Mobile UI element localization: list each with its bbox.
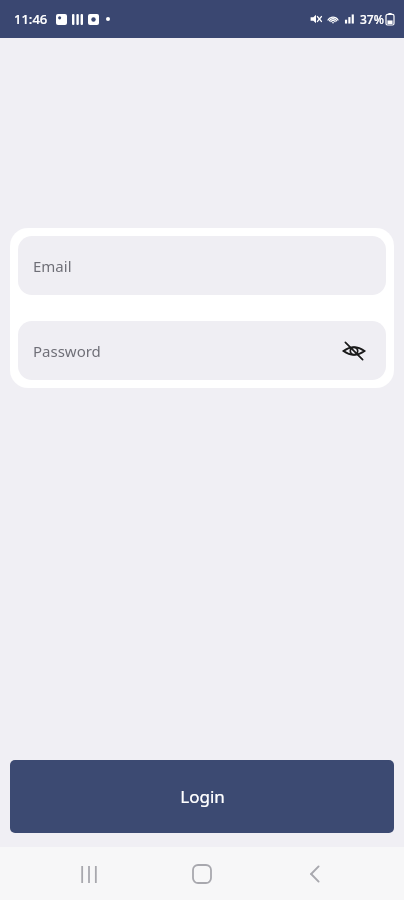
staticText: Email — [33, 256, 72, 276]
staticText: 37% — [360, 11, 384, 27]
staticText: 11:46 — [14, 10, 48, 28]
button[interactable]: Back — [291, 850, 339, 898]
button[interactable]: Email — [18, 236, 386, 295]
button[interactable]: Recents — [65, 850, 113, 898]
button[interactable]: Show password — [337, 334, 371, 368]
button[interactable]: Login — [10, 760, 394, 833]
button[interactable]: Home — [178, 850, 226, 898]
button[interactable]: Password — [18, 321, 386, 380]
staticText: Login — [180, 785, 225, 808]
staticText: Password — [33, 341, 101, 361]
